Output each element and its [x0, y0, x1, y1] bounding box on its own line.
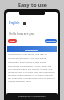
- staticText: Mistakes: there were a few small: [8, 60, 47, 63]
- staticText: Translation: Well done, the text is: [8, 52, 47, 55]
- button[interactable]: Powered by AI translation: [6, 93, 58, 100]
- staticText: Powered by AI translation: [18, 95, 46, 98]
- staticText: Corrected English: You are doing: [8, 56, 47, 59]
- button[interactable]: Translate: [45, 39, 57, 43]
- staticText: Translate: [46, 40, 56, 43]
- button[interactable]: Swap languages: [23, 22, 26, 25]
- button[interactable]: Translation: [7, 46, 57, 52]
- staticText: Translation: [25, 48, 39, 51]
- staticText: Improved Translation: Hello, how are you…: [8, 64, 56, 82]
- staticText: Easy to use: [18, 1, 47, 8]
- button[interactable]: English: [9, 21, 20, 25]
- staticText: Hello how are you: [9, 32, 35, 36]
- staticText: Stop: [10, 40, 15, 43]
- button[interactable]: Stop: [8, 39, 17, 43]
- staticText: English: [9, 21, 20, 25]
